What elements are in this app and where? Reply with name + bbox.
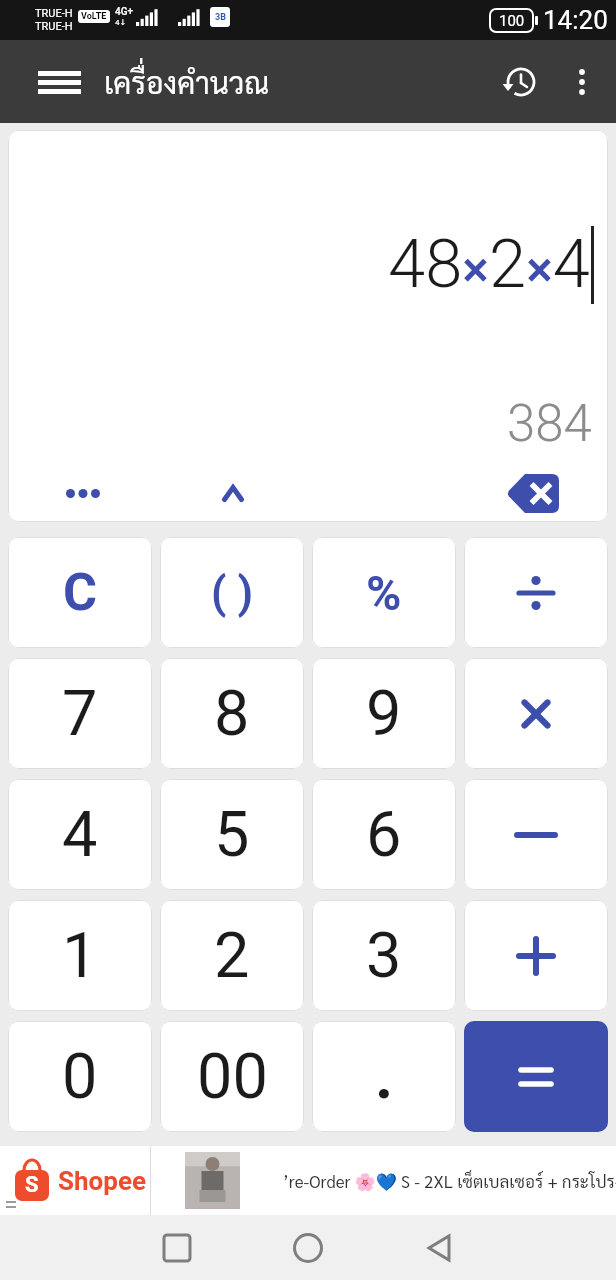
button[interactable]: 3 (312, 900, 456, 1011)
staticText: 0 (62, 1040, 98, 1114)
button[interactable]: . (312, 1021, 456, 1132)
button[interactable] (562, 62, 602, 102)
button[interactable]: 00 (160, 1021, 304, 1132)
button[interactable]: 0 (8, 1021, 152, 1132)
staticText: . (375, 1040, 394, 1114)
staticText: 6 (366, 798, 402, 872)
button[interactable] (415, 1224, 463, 1272)
button[interactable]: 8 (160, 658, 304, 769)
button[interactable]: 1 (8, 900, 152, 1011)
staticText: 00 (197, 1040, 268, 1114)
button[interactable] (8, 464, 158, 522)
staticText: 14:20 (543, 5, 608, 35)
button[interactable] (464, 1021, 608, 1132)
staticText: 4G+ (115, 6, 134, 18)
staticText: เครื่องคำนวณ (104, 62, 270, 101)
staticText: TRUE-H (35, 20, 73, 33)
staticText: 5 (214, 798, 250, 872)
staticText: TRUE-H (35, 7, 73, 20)
button[interactable]: 4 (8, 779, 152, 890)
staticText: C (63, 562, 98, 623)
staticText: VoLTE (81, 11, 107, 22)
staticText: 1 (62, 919, 98, 993)
button[interactable] (458, 464, 608, 522)
button[interactable] (284, 1224, 332, 1272)
button[interactable] (153, 1224, 201, 1272)
staticText: 48×2×4 (388, 225, 591, 304)
button[interactable] (464, 900, 608, 1011)
button[interactable] (464, 537, 608, 648)
staticText: 100 (499, 12, 525, 30)
button[interactable]: % (312, 537, 456, 648)
button[interactable] (24, 52, 94, 112)
button[interactable]: ( ) (160, 537, 304, 648)
staticText: ( ) (211, 567, 253, 619)
button[interactable] (464, 658, 608, 769)
staticText: 3 (366, 919, 402, 993)
staticText: ’re-Order 🌸💙 S - 2XL เซ็ตเบลเซอร์ + กระโ… (283, 1170, 616, 1192)
staticText: 9 (366, 677, 402, 751)
staticText: 4 (62, 798, 98, 872)
staticText: Shopee (58, 1166, 146, 1196)
staticText: 3B (215, 12, 226, 23)
staticText: 2 (214, 919, 250, 993)
button[interactable]: C (8, 537, 152, 648)
button[interactable]: S (0, 1146, 616, 1215)
staticText: 8 (214, 677, 250, 751)
staticText: 384 (507, 394, 592, 454)
button[interactable]: 7 (8, 658, 152, 769)
button[interactable] (158, 464, 308, 522)
button[interactable]: 2 (160, 900, 304, 1011)
staticText: % (366, 565, 402, 621)
button[interactable]: 9 (312, 658, 456, 769)
staticText: 4↓ (115, 18, 127, 27)
staticText: 7 (62, 677, 98, 751)
button[interactable] (464, 779, 608, 890)
button[interactable]: 5 (160, 779, 304, 890)
staticText: S (25, 1172, 39, 1198)
button[interactable] (496, 58, 544, 106)
button[interactable]: 6 (312, 779, 456, 890)
